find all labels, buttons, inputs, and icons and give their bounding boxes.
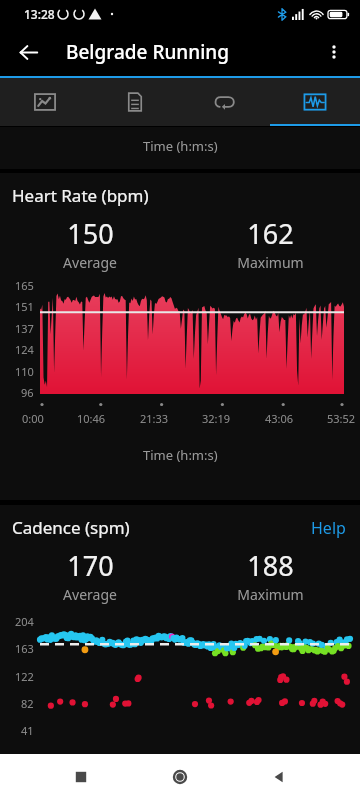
button[interactable]: Back bbox=[256, 754, 302, 800]
button[interactable]: Charts bbox=[270, 78, 360, 126]
staticText: 21:33 bbox=[140, 411, 169, 426]
staticText: 162 bbox=[247, 215, 294, 252]
button[interactable]: Recents bbox=[58, 754, 104, 800]
staticText: Average bbox=[63, 253, 117, 272]
staticText: Time (h:m:s) bbox=[143, 446, 218, 464]
staticText: 122 bbox=[15, 669, 34, 684]
button[interactable]: More options bbox=[314, 32, 354, 72]
button[interactable]: Home bbox=[157, 754, 203, 800]
staticText: 124 bbox=[15, 342, 34, 357]
staticText: 163 bbox=[15, 641, 34, 656]
staticText: 188 bbox=[247, 547, 294, 584]
staticText: 150 bbox=[67, 215, 114, 252]
staticText: Maximum bbox=[237, 253, 304, 272]
staticText: 82 bbox=[21, 696, 34, 711]
staticText: 41 bbox=[21, 723, 34, 738]
button[interactable]: Laps bbox=[180, 78, 270, 126]
button[interactable]: Help bbox=[311, 517, 346, 539]
staticText: 151 bbox=[15, 299, 34, 314]
staticText: 13:28 bbox=[24, 6, 55, 22]
staticText: 0:00 bbox=[22, 411, 44, 426]
staticText: 165 bbox=[15, 278, 34, 293]
staticText: 10:46 bbox=[77, 411, 106, 426]
staticText: 137 bbox=[15, 321, 34, 336]
staticText: 43:06 bbox=[265, 411, 294, 426]
staticText: 53:52 bbox=[327, 411, 356, 426]
staticText: 32:19 bbox=[202, 411, 231, 426]
staticText: Average bbox=[63, 585, 117, 604]
staticText: Heart Rate (bpm) bbox=[12, 184, 149, 207]
staticText: Time (h:m:s) bbox=[143, 137, 218, 155]
staticText: Cadence (spm) bbox=[12, 516, 130, 539]
staticText: 204 bbox=[15, 614, 34, 629]
staticText: Maximum bbox=[237, 585, 304, 604]
button[interactable]: Heart Rate (bpm) bbox=[0, 173, 360, 500]
staticText: Belgrade Running bbox=[66, 39, 229, 65]
button[interactable]: Back bbox=[8, 32, 48, 72]
staticText: 96 bbox=[21, 385, 34, 400]
button[interactable]: Details bbox=[90, 78, 180, 126]
staticText: 110 bbox=[15, 364, 34, 379]
button[interactable]: Time (h:m:s) bbox=[0, 127, 360, 169]
button[interactable]: Map bbox=[0, 78, 90, 126]
button[interactable]: Cadence (spm) bbox=[0, 505, 360, 754]
staticText: 170 bbox=[67, 547, 114, 584]
staticText: Help bbox=[311, 517, 346, 539]
